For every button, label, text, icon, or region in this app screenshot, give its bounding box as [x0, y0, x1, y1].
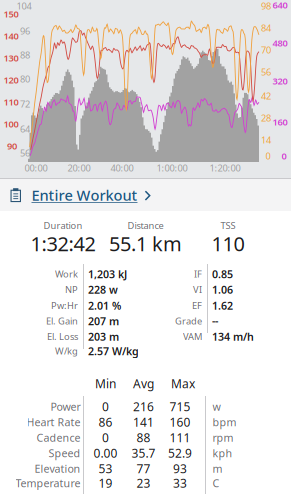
staticText: 0.00: [93, 445, 117, 461]
staticText: 100: [3, 118, 18, 130]
staticText: 110: [211, 230, 244, 257]
staticText: 98: [261, 0, 271, 12]
staticText: 93: [173, 460, 187, 476]
staticText: 64: [20, 123, 30, 135]
staticText: TSS: [220, 219, 235, 232]
staticText: 320: [272, 75, 287, 87]
staticText: W/kg: [55, 345, 78, 357]
staticText: 42: [261, 90, 271, 102]
staticText: 2.01 %: [88, 298, 121, 313]
staticText: 104: [16, 0, 31, 12]
staticText: C: [212, 476, 219, 490]
staticText: --: [212, 314, 218, 328]
staticText: VI: [193, 283, 202, 296]
staticText: m: [212, 461, 222, 476]
staticText: 1:32:42: [30, 230, 95, 257]
staticText: Max: [171, 375, 195, 391]
staticText: 28: [261, 112, 271, 124]
staticText: 80: [20, 73, 30, 85]
staticText: VAM: [183, 330, 202, 343]
staticText: 480: [272, 37, 287, 49]
staticText: Heart Rate: [26, 415, 80, 429]
staticText: 53: [98, 460, 112, 476]
staticText: 35.7: [131, 445, 155, 461]
staticText: Speed: [48, 446, 80, 460]
staticText: 0: [265, 150, 270, 162]
staticText: 72: [20, 98, 30, 110]
staticText: El. Gain: [46, 315, 78, 327]
staticText: 70: [261, 44, 271, 56]
staticText: 134 m/h: [212, 329, 254, 344]
staticText: Pw:Hr: [51, 299, 78, 312]
staticText: 0.85: [212, 267, 233, 281]
staticText: 33: [173, 475, 187, 491]
staticText: El. Loss: [47, 330, 78, 343]
staticText: 56: [20, 147, 30, 159]
staticText: 160: [169, 414, 190, 430]
staticText: Grade: [175, 315, 202, 327]
staticText: 1:20:00: [209, 162, 240, 174]
staticText: 0: [102, 398, 109, 414]
staticText: Cadence: [36, 430, 80, 445]
staticText: w: [212, 399, 220, 414]
staticText: 84: [261, 22, 271, 34]
staticText: 56: [261, 66, 271, 78]
staticText: 55.1 km: [109, 230, 182, 257]
staticText: 52.9: [168, 445, 192, 461]
staticText: Power: [50, 399, 80, 414]
staticText: 86: [98, 414, 112, 430]
staticText: 00:00: [24, 162, 47, 174]
staticText: 110: [3, 96, 18, 108]
staticText: 150: [3, 8, 18, 20]
staticText: NP: [65, 283, 78, 296]
staticText: 14: [261, 134, 271, 146]
staticText: 2.57 W/kg: [88, 344, 139, 358]
staticText: EF: [192, 299, 202, 312]
staticText: 207 m: [88, 314, 119, 328]
staticText: Avg: [133, 375, 154, 391]
staticText: 1.06: [212, 282, 233, 297]
staticText: 20:00: [67, 162, 90, 174]
staticText: Work: [55, 268, 78, 280]
staticText: 130: [3, 52, 18, 64]
staticText: 715: [169, 398, 190, 414]
staticText: 88: [20, 49, 30, 61]
staticText: Min: [95, 375, 116, 391]
staticText: 141: [133, 414, 154, 430]
staticText: Distance: [127, 219, 163, 232]
staticText: 23: [136, 475, 150, 491]
staticText: 40:00: [110, 162, 133, 174]
staticText: IF: [194, 268, 202, 280]
staticText: Duration: [43, 219, 82, 232]
staticText: 19: [98, 475, 112, 491]
staticText: 0: [281, 150, 286, 162]
staticText: 88: [136, 429, 150, 445]
staticText: Temperature: [15, 476, 80, 490]
staticText: 96: [20, 25, 30, 37]
staticText: 640: [272, 0, 287, 11]
staticText: 90: [7, 140, 17, 152]
staticText: 160: [272, 116, 287, 128]
staticText: Elevation: [34, 461, 80, 476]
staticText: rpm: [212, 430, 233, 445]
staticText: 111: [169, 429, 190, 445]
staticText: 1,203 kJ: [88, 267, 127, 281]
staticText: 120: [3, 74, 18, 86]
staticText: bpm: [212, 415, 236, 429]
staticText: 77: [136, 460, 150, 476]
staticText: 228 w: [88, 282, 118, 297]
staticText: 1.62: [212, 298, 233, 313]
staticText: 203 m: [88, 329, 119, 344]
staticText: 1:00:00: [156, 162, 187, 174]
staticText: Entire Workout: [31, 185, 137, 205]
staticText: kph: [212, 446, 232, 460]
button[interactable]: Entire Workout: [0, 179, 291, 211]
staticText: 140: [3, 30, 18, 42]
staticText: 0: [102, 429, 109, 445]
staticText: 216: [133, 398, 154, 414]
